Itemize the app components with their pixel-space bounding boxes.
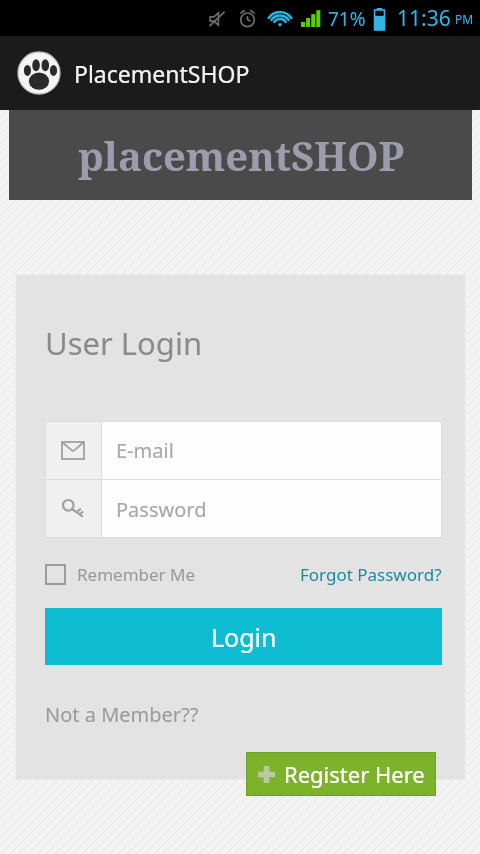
button[interactable]: Email bbox=[45, 421, 442, 479]
staticText: Register Here bbox=[284, 759, 425, 789]
other: Signal bbox=[301, 10, 321, 27]
staticText: 11:36 bbox=[397, 4, 451, 33]
staticText: E-mail bbox=[116, 437, 174, 464]
other: Password bbox=[62, 499, 84, 519]
other: Battery bbox=[373, 8, 386, 30]
other: Muted bbox=[208, 10, 226, 28]
staticText: Not a Member?? bbox=[45, 701, 199, 728]
other: Alarm bbox=[238, 9, 257, 28]
staticText: Remember Me bbox=[77, 563, 196, 586]
staticText: 71% bbox=[328, 6, 366, 32]
other: Email bbox=[62, 442, 84, 459]
button[interactable]: Remember Me bbox=[45, 559, 196, 590]
staticText: User Login bbox=[45, 322, 203, 364]
staticText: placementSHOP bbox=[78, 128, 404, 182]
button[interactable]: Login bbox=[45, 608, 442, 665]
staticText: Forgot Password? bbox=[300, 563, 442, 586]
button[interactable]: Password bbox=[45, 480, 442, 538]
staticText: Password bbox=[116, 496, 207, 523]
other: Wi-Fi bbox=[269, 10, 291, 27]
button[interactable]: Register Here bbox=[246, 752, 436, 796]
button[interactable]: Forgot Password? bbox=[300, 559, 442, 590]
staticText: PlacementSHOP bbox=[74, 58, 250, 89]
staticText: PM bbox=[455, 11, 474, 27]
staticText: Login bbox=[211, 620, 277, 654]
other: App logo bbox=[18, 52, 60, 94]
